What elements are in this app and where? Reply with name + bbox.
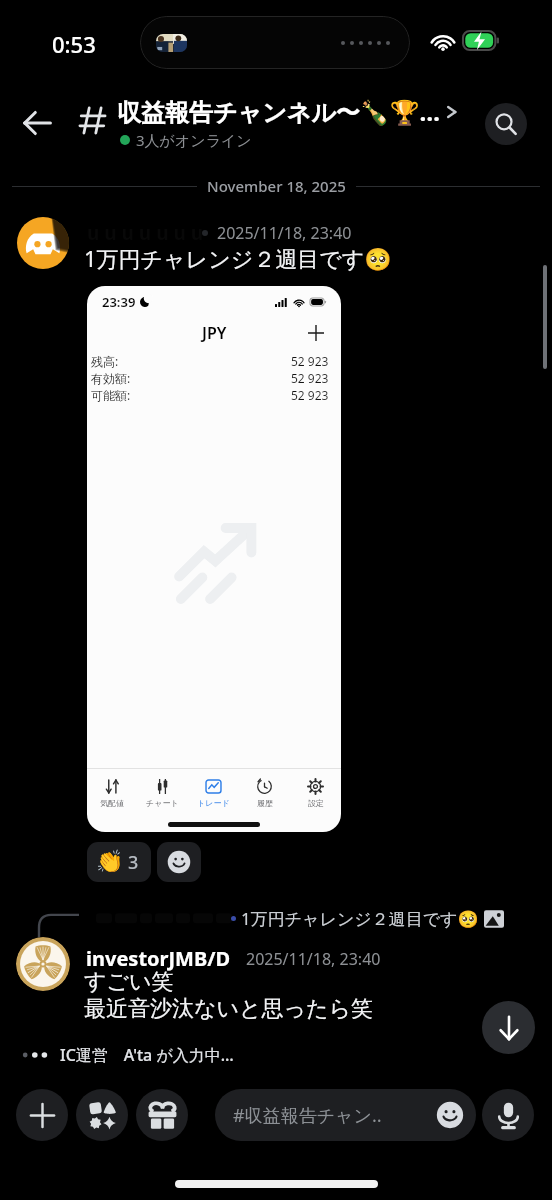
button[interactable]: Stickers — [76, 1089, 128, 1141]
staticText: 52 923 — [291, 370, 329, 386]
button[interactable]: Attached screenshot — [87, 286, 341, 832]
button[interactable]: チャート — [137, 778, 188, 808]
button[interactable]: 👏 — [87, 842, 151, 882]
staticText: 3 — [128, 850, 139, 875]
staticText: 👏 — [96, 849, 124, 875]
button[interactable]: 収益報告チャンネル〜🍾🏆… — [117, 95, 458, 128]
button[interactable]: トレード — [188, 778, 239, 808]
staticText: 気配値 — [100, 798, 124, 808]
staticText: 52 923 — [291, 387, 329, 403]
staticText: 設定 — [308, 798, 324, 808]
staticText: 2025/11/18, 23:40 — [246, 948, 381, 970]
button[interactable]: Gift — [136, 1089, 188, 1141]
staticText: 23:39 — [102, 293, 136, 311]
button[interactable]: Scroll to bottom — [482, 1001, 535, 1054]
staticText: 履歴 — [257, 798, 273, 808]
staticText: 収益報告チャンネル〜🍾🏆… — [117, 95, 441, 128]
staticText: IC運営 A'ta が入力中… — [60, 1044, 234, 1066]
staticText: 2025/11/18, 23:40 — [217, 222, 352, 244]
staticText: u u u u u u u — [87, 220, 204, 246]
staticText: 1万円チャレンジ２週目です🥺 — [241, 907, 479, 930]
staticText: トレード — [197, 798, 230, 808]
staticText: チャート — [146, 798, 179, 808]
button[interactable]: 気配値 — [87, 778, 137, 808]
staticText: 可能額: — [91, 387, 131, 403]
staticText: 0:53 — [52, 29, 96, 59]
button[interactable]: 履歴 — [239, 778, 290, 808]
button[interactable]: 設定 — [290, 778, 341, 808]
staticText: November 18, 2025 — [207, 176, 346, 196]
button[interactable]: #収益報告チャン‥ — [215, 1089, 476, 1141]
staticText: 残高: — [91, 353, 119, 369]
staticText: 最近音沙汰ないと思ったら笑 — [84, 995, 374, 1023]
staticText: 1万円チャレンジ２週目です🥺 — [84, 243, 392, 273]
button[interactable]: Add reaction — [157, 842, 201, 882]
button[interactable]: Search — [485, 103, 527, 145]
button[interactable]: Add attachment — [16, 1089, 68, 1141]
staticText: すごい笑 — [84, 968, 174, 996]
staticText: #収益報告チャン‥ — [233, 1103, 382, 1128]
staticText: JPY — [202, 322, 227, 344]
button[interactable]: Voice message — [482, 1089, 534, 1141]
staticText: 52 923 — [291, 353, 329, 369]
button[interactable]: Back — [14, 100, 60, 146]
button[interactable]: Add — [303, 320, 329, 346]
staticText: 有効額: — [91, 370, 131, 386]
staticText: 3人がオンライン — [136, 130, 252, 150]
staticText: investorJMB/D — [86, 945, 231, 972]
